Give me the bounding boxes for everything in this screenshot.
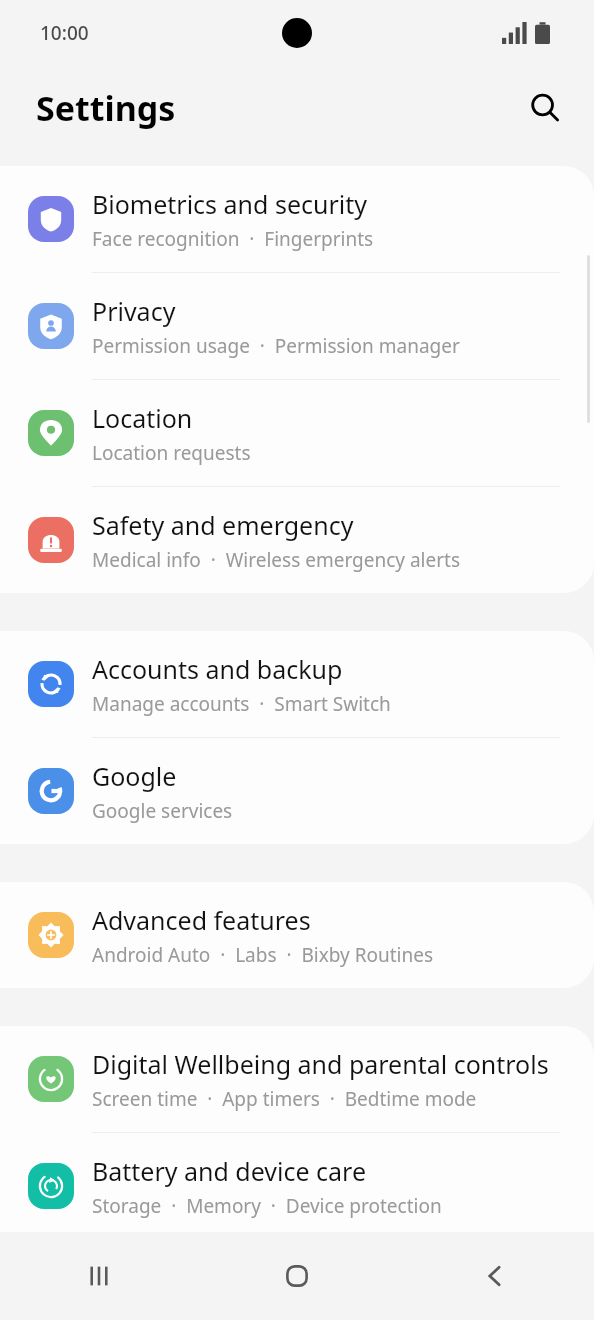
staticText: Google bbox=[92, 759, 177, 793]
staticText: Location requests bbox=[92, 440, 251, 466]
button[interactable]: Location bbox=[0, 380, 594, 486]
button[interactable]: Biometrics and security bbox=[0, 166, 594, 272]
staticText: Face recognition · Fingerprints bbox=[92, 226, 374, 252]
staticText: Location bbox=[92, 401, 193, 435]
button[interactable]: Digital Wellbeing and parental controls bbox=[0, 1026, 594, 1132]
staticText: Digital Wellbeing and parental controls bbox=[92, 1047, 549, 1081]
staticText: Settings bbox=[36, 85, 176, 131]
button[interactable]: Battery and device care bbox=[0, 1133, 594, 1239]
staticText: Medical info · Wireless emergency alerts bbox=[92, 547, 461, 573]
staticText: Privacy bbox=[92, 294, 176, 328]
button[interactable]: Recents bbox=[0, 1232, 198, 1320]
staticText: Safety and emergency bbox=[92, 508, 354, 542]
button[interactable]: Advanced features bbox=[0, 882, 594, 988]
staticText: Android Auto · Labs · Bixby Routines bbox=[92, 942, 434, 968]
staticText: Storage · Memory · Device protection bbox=[92, 1193, 442, 1219]
staticText: Screen time · App timers · Bedtime mode bbox=[92, 1086, 477, 1112]
button[interactable]: Back bbox=[396, 1232, 594, 1320]
staticText: Advanced features bbox=[92, 903, 311, 937]
button[interactable]: Search bbox=[518, 81, 572, 135]
staticText: Google services bbox=[92, 798, 233, 824]
staticText: 10:00 bbox=[40, 20, 89, 46]
staticText: Permission usage · Permission manager bbox=[92, 333, 460, 359]
staticText: Accounts and backup bbox=[92, 652, 343, 686]
button[interactable]: Google bbox=[0, 738, 594, 844]
staticText: Biometrics and security bbox=[92, 187, 368, 221]
button[interactable]: Privacy bbox=[0, 273, 594, 379]
staticText: Battery and device care bbox=[92, 1154, 367, 1188]
staticText: Manage accounts · Smart Switch bbox=[92, 691, 391, 717]
button[interactable]: Home bbox=[198, 1232, 396, 1320]
button[interactable]: Accounts and backup bbox=[0, 631, 594, 737]
button[interactable]: Safety and emergency bbox=[0, 487, 594, 593]
